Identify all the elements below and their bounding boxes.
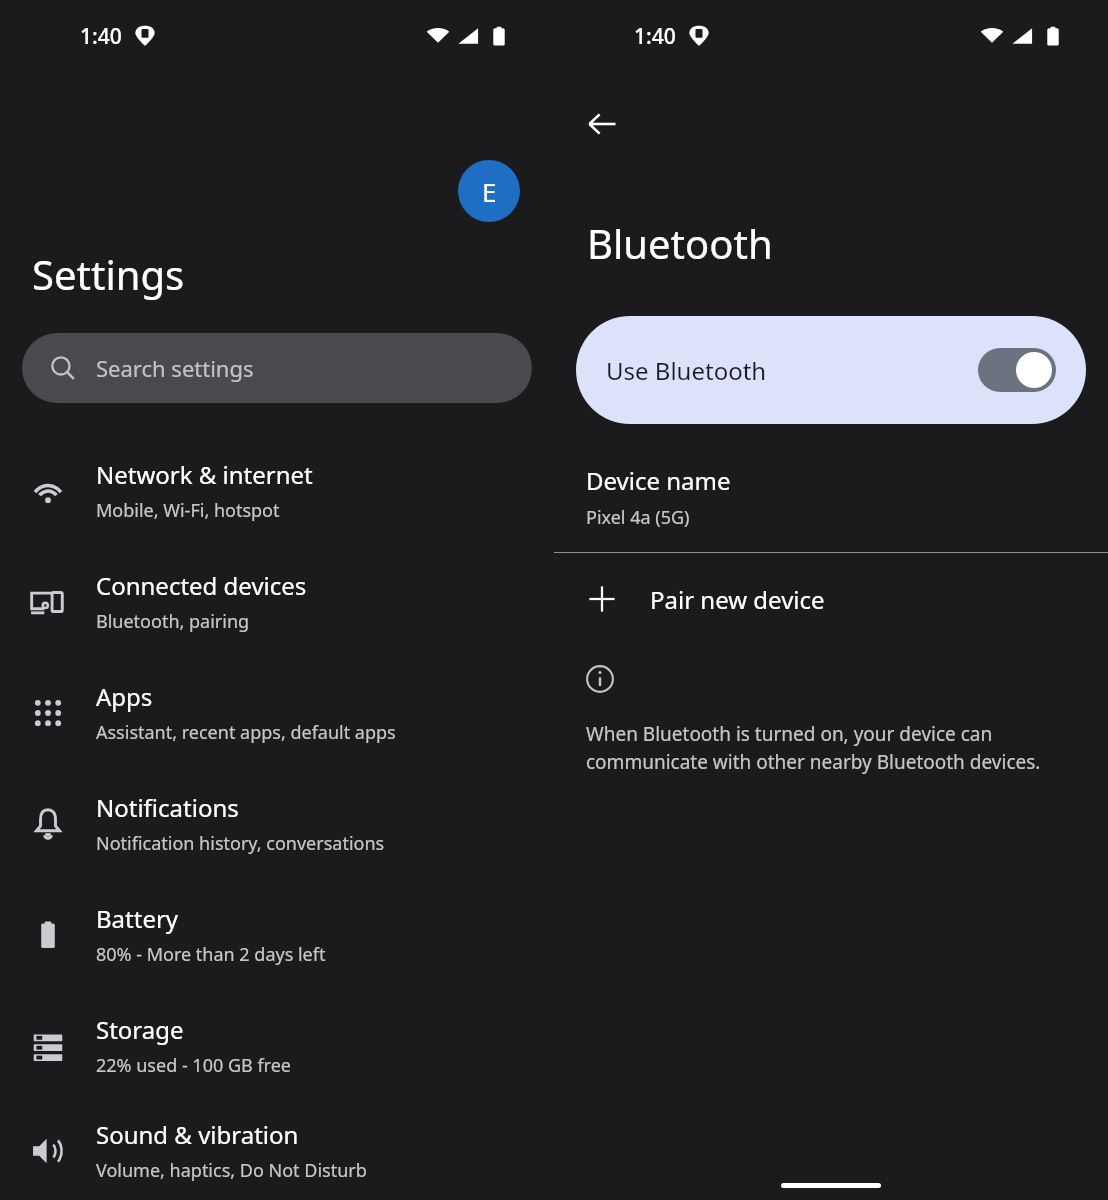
staticText: Bluetooth, pairing bbox=[96, 609, 250, 634]
button[interactable]: Device name bbox=[586, 464, 1108, 530]
staticText: Assistant, recent apps, default apps bbox=[96, 720, 396, 745]
button[interactable]: Back bbox=[572, 94, 632, 154]
staticText: When Bluetooth is turned on, your device… bbox=[586, 721, 1080, 775]
staticText: E bbox=[482, 174, 497, 209]
button[interactable]: Battery bbox=[0, 879, 554, 990]
button[interactable]: Storage bbox=[0, 990, 554, 1101]
staticText: Bluetooth bbox=[587, 216, 773, 270]
staticText: Pair new device bbox=[650, 583, 825, 616]
button[interactable]: Sound & vibration bbox=[0, 1101, 554, 1200]
staticText: Network & internet bbox=[96, 458, 313, 491]
staticText: Connected devices bbox=[96, 569, 307, 602]
button[interactable]: Notifications bbox=[0, 768, 554, 879]
staticText: Notifications bbox=[96, 791, 239, 824]
button[interactable]: Network & internet bbox=[0, 435, 554, 546]
staticText: Pixel 4a (5G) bbox=[586, 505, 690, 530]
button[interactable]: Pair new device bbox=[554, 553, 1108, 645]
staticText: Notification history, conversations bbox=[96, 831, 385, 856]
staticText: 80% - More than 2 days left bbox=[96, 942, 326, 967]
staticText: Sound & vibration bbox=[96, 1118, 299, 1151]
staticText: 1:40 bbox=[634, 22, 676, 51]
staticText: 22% used - 100 GB free bbox=[96, 1053, 291, 1078]
staticText: Mobile, Wi-Fi, hotspot bbox=[96, 498, 280, 523]
staticText: Volume, haptics, Do Not Disturb bbox=[96, 1158, 367, 1183]
button[interactable]: Account bbox=[458, 160, 520, 222]
staticText: Storage bbox=[96, 1013, 184, 1046]
button[interactable]: Connected devices bbox=[0, 546, 554, 657]
staticText: Device name bbox=[586, 464, 731, 497]
staticText: Battery bbox=[96, 902, 179, 935]
staticText: Settings bbox=[32, 247, 185, 301]
staticText: Use Bluetooth bbox=[606, 354, 767, 387]
button[interactable]: Apps bbox=[0, 657, 554, 768]
button[interactable]: Use Bluetooth bbox=[576, 316, 1086, 424]
staticText: Search settings bbox=[96, 353, 254, 383]
staticText: 1:40 bbox=[80, 22, 122, 51]
staticText: Apps bbox=[96, 680, 153, 713]
button[interactable]: Search settings bbox=[22, 333, 532, 403]
